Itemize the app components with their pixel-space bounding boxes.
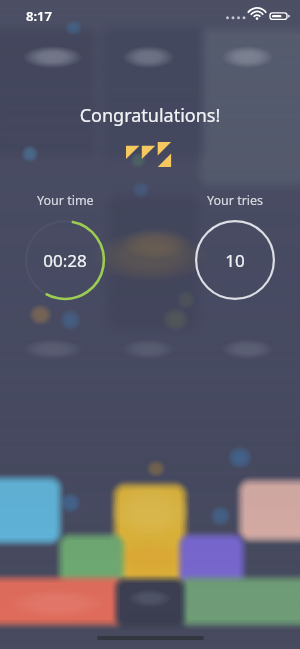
other: App logo [126, 142, 174, 168]
button[interactable]: Your tries [192, 190, 278, 303]
staticText: Your time [37, 192, 94, 209]
staticText: 8:17 [26, 7, 52, 25]
staticText: 10 [225, 249, 245, 272]
staticText: 00:28 [43, 249, 87, 272]
button[interactable]: Your time [22, 190, 108, 303]
staticText: Your tries [207, 192, 264, 209]
staticText: Congratulations! [0, 103, 300, 128]
